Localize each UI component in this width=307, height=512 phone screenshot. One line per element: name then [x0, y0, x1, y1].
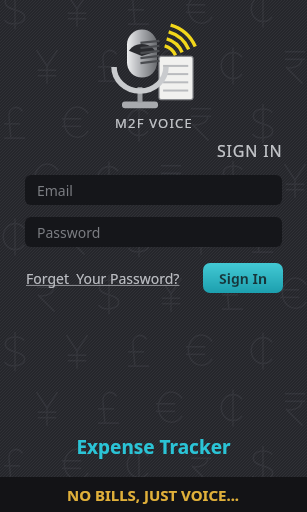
staticText: Email: [37, 181, 73, 200]
staticText: Sign In: [219, 269, 268, 288]
staticText: Password: [37, 223, 101, 242]
staticText: SIGN IN: [217, 140, 283, 162]
button[interactable]: Password: [25, 217, 282, 247]
button[interactable]: Forget Your Password?: [26, 269, 180, 288]
staticText: Forget Your Password?: [26, 269, 180, 288]
button[interactable]: Email: [25, 175, 282, 205]
staticText: M2F VOICE: [115, 114, 193, 132]
staticText: NO BILLS, JUST VOICE...: [67, 485, 240, 505]
staticText: Expense Tracker: [0, 434, 307, 460]
button[interactable]: Sign In: [203, 263, 283, 293]
